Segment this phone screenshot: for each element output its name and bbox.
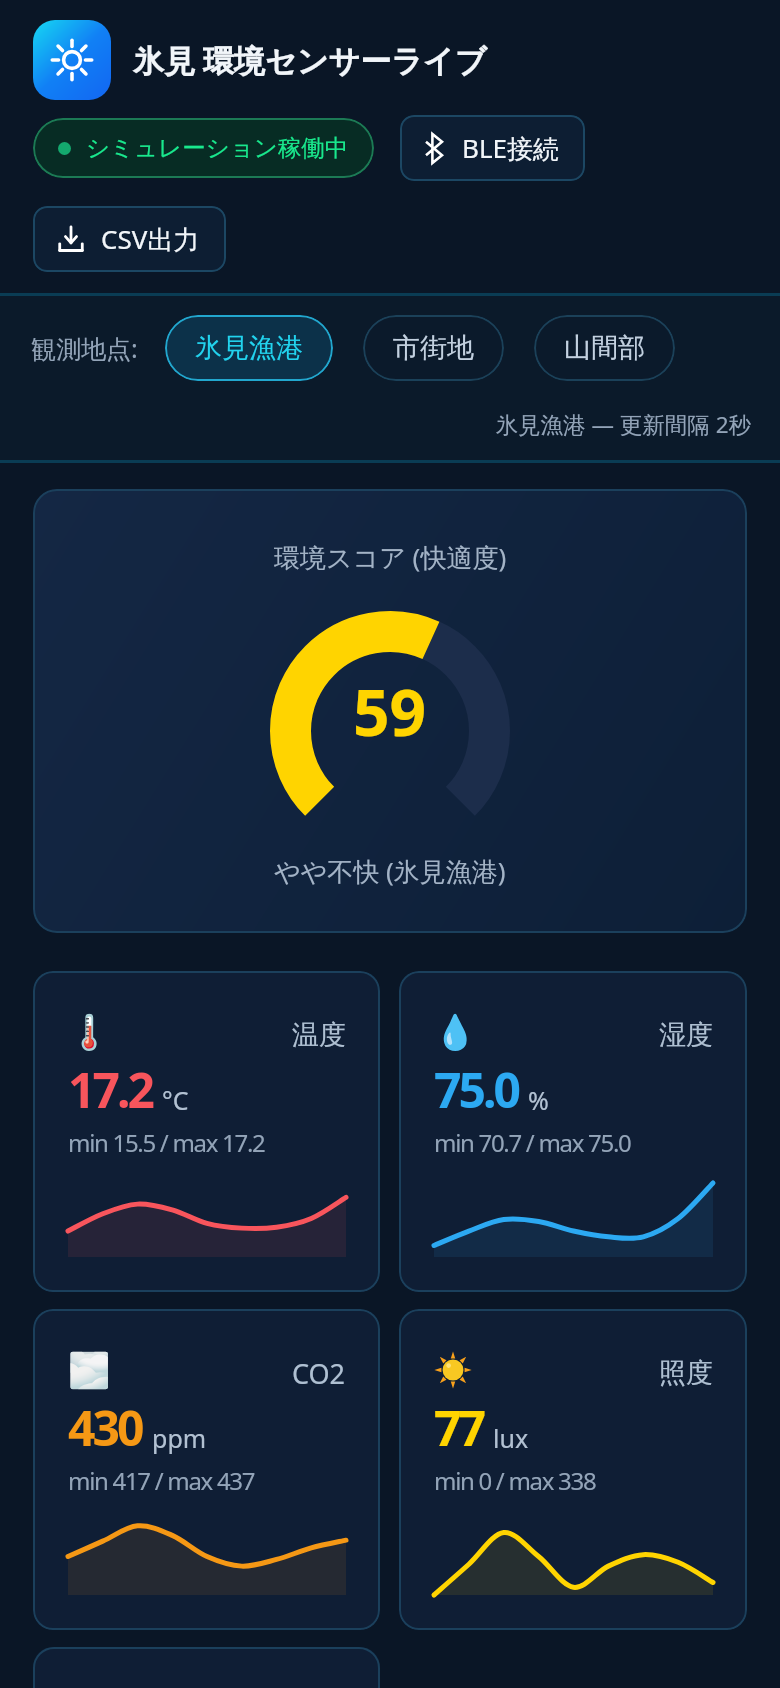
staticText: CSV出力 <box>101 221 200 257</box>
staticText: CO2 <box>292 1355 346 1392</box>
staticText: 観測地点: <box>31 331 138 365</box>
staticText: 430 <box>68 1395 142 1460</box>
staticText: 75.0 <box>434 1057 518 1122</box>
staticText: 77 <box>434 1395 483 1460</box>
staticText: 温度 <box>292 1018 346 1052</box>
button[interactable]: 環境スコア (快適度) <box>33 489 747 933</box>
staticText: やや不快 (氷見漁港) <box>274 853 506 889</box>
button[interactable]: 🌫️ <box>33 1309 380 1630</box>
staticText: lux <box>493 1421 529 1455</box>
staticText: 氷見漁港 <box>195 331 303 365</box>
button[interactable]: CSV出力 <box>33 206 226 272</box>
staticText: 湿度 <box>659 1018 713 1052</box>
staticText: 氷見 環境センサーライブ <box>133 39 487 81</box>
staticText: °C <box>162 1083 189 1117</box>
button[interactable]: 💧 <box>399 971 747 1292</box>
button[interactable]: App icon <box>33 20 111 100</box>
staticText: min 0 / max 338 <box>434 1464 596 1497</box>
staticText: 山間部 <box>564 331 645 365</box>
button[interactable]: 氷見漁港 <box>165 315 333 381</box>
staticText: 59 <box>353 668 427 755</box>
staticText: 環境スコア (快適度) <box>274 539 507 575</box>
staticText: ppm <box>152 1421 207 1455</box>
button[interactable]: 市街地 <box>363 315 504 381</box>
staticText: BLE接続 <box>462 130 559 166</box>
staticText: 市街地 <box>393 331 474 365</box>
staticText: 照度 <box>659 1356 713 1390</box>
staticText: シミュレーション稼働中 <box>86 133 349 163</box>
staticText: 🌡️ <box>68 1012 111 1052</box>
button[interactable]: 照度 <box>399 1309 747 1630</box>
staticText: 🌫️ <box>68 1350 111 1390</box>
staticText: min 417 / max 437 <box>68 1464 255 1497</box>
button[interactable]: 山間部 <box>534 315 675 381</box>
staticText: 17.2 <box>68 1057 152 1122</box>
button[interactable]: 🌡️ <box>33 971 380 1292</box>
staticText: min 15.5 / max 17.2 <box>68 1126 265 1159</box>
button[interactable]: BLE接続 <box>400 115 585 181</box>
button[interactable]: 気圧センサー <box>33 1647 380 1688</box>
staticText: min 70.7 / max 75.0 <box>434 1126 631 1159</box>
staticText: 💧 <box>434 1012 477 1052</box>
staticText: % <box>528 1083 549 1117</box>
staticText: 氷見漁港 ― 更新間隔 2秒 <box>31 409 751 440</box>
button[interactable]: シミュレーション稼働中 <box>33 118 374 178</box>
